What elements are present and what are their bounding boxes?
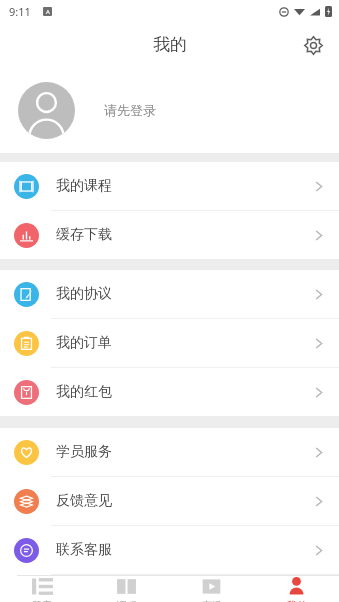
staticText: A [46,8,50,16]
button[interactable]: 题库 [0,576,84,602]
button[interactable]: 缓存下载 [0,211,339,259]
staticText: 课程 [117,599,137,602]
button[interactable]: 请先登录 [88,96,172,124]
button[interactable]: 直播 [169,576,254,602]
button[interactable]: 我的 [254,576,339,602]
button[interactable]: 我的课程 [0,162,339,211]
staticText: 我的 [287,599,307,602]
staticText: 学员服务 [56,443,112,461]
button[interactable]: 课程 [84,576,169,602]
button[interactable]: 我的红包 [0,368,339,416]
staticText: 我的课程 [56,177,112,195]
staticText: 反馈意见 [56,492,112,510]
staticText: 直播 [202,599,222,602]
staticText: 我的 [153,34,187,55]
button[interactable]: 反馈意见 [0,477,339,526]
staticText: 我的订单 [56,334,112,352]
staticText: 题库 [32,599,52,602]
button[interactable]: Settings [298,30,328,60]
button[interactable]: 我的订单 [0,319,339,368]
staticText: 请先登录 [104,102,156,118]
staticText: 我的红包 [56,383,112,401]
staticText: 我的协议 [56,285,112,303]
button[interactable]: 我的协议 [0,270,339,319]
staticText: 9:11 [9,4,31,19]
button[interactable]: Avatar [18,82,75,139]
button[interactable]: 学员服务 [0,428,339,477]
button[interactable]: 联系客服 [0,526,339,575]
staticText: 联系客服 [56,541,112,559]
staticText: 缓存下载 [56,226,112,244]
